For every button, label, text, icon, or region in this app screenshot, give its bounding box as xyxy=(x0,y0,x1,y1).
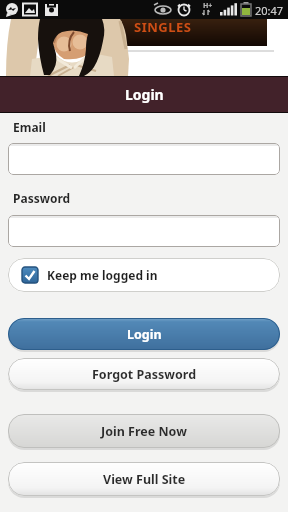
button[interactable]: Join Free Now xyxy=(8,414,280,448)
staticText: Join Free Now xyxy=(101,423,187,440)
staticText: Forgot Password xyxy=(92,366,197,383)
staticText: SINGLES xyxy=(134,18,192,36)
button[interactable]: Forgot Password xyxy=(8,358,280,390)
button[interactable]: Login xyxy=(8,318,280,350)
staticText: Keep me logged in xyxy=(47,267,158,283)
button[interactable]: Keep me logged in xyxy=(8,258,280,292)
staticText: Login xyxy=(125,85,164,104)
button[interactable]: SINGLES xyxy=(112,19,272,50)
staticText: H+ xyxy=(203,1,213,11)
button[interactable] xyxy=(8,215,280,247)
button[interactable] xyxy=(8,143,280,175)
staticText: Login xyxy=(127,326,162,343)
button[interactable]: View Full Site xyxy=(8,462,280,496)
staticText: 20:47 xyxy=(255,3,284,18)
staticText: View Full Site xyxy=(103,471,186,488)
staticText: Email xyxy=(13,119,46,135)
staticText: Password xyxy=(13,190,71,206)
